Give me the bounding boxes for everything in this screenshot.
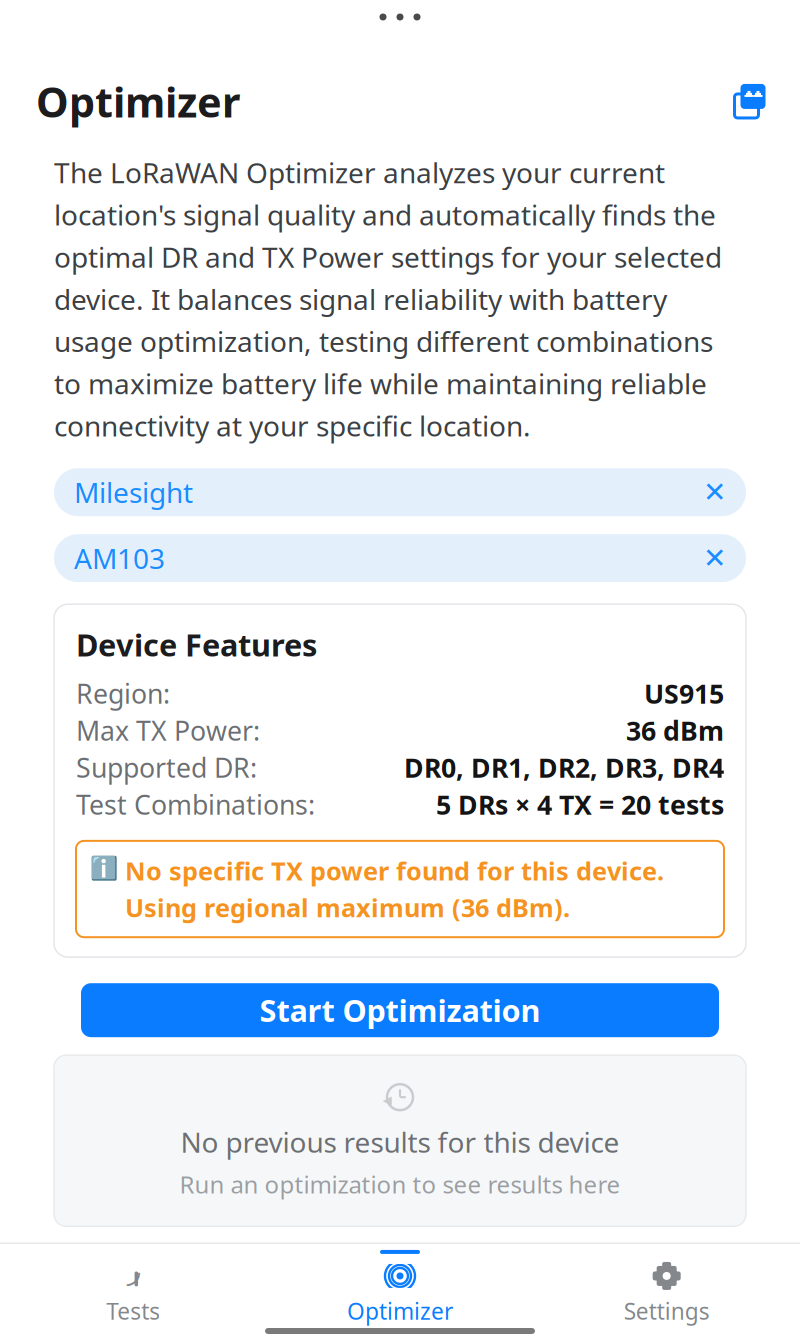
staticText: Milesight xyxy=(74,474,193,511)
staticText: AM103 xyxy=(74,540,165,577)
button[interactable]: Milesight xyxy=(54,468,746,516)
staticText: Optimizer xyxy=(36,74,240,129)
staticText: Tests xyxy=(106,1296,160,1326)
staticText: Max TX Power: xyxy=(76,713,260,748)
staticText: Test Combinations: xyxy=(76,787,315,822)
button[interactable]: ◞ xyxy=(0,1244,267,1326)
staticText: Device Features xyxy=(76,624,317,665)
staticText: Settings xyxy=(624,1296,710,1326)
staticText: Supported DR: xyxy=(76,750,257,785)
staticText: ◞ xyxy=(127,1250,140,1290)
staticText: The LoRaWAN Optimizer analyzes your curr… xyxy=(54,154,722,444)
staticText: Optimizer xyxy=(347,1296,453,1326)
staticText: Start Optimization xyxy=(259,990,540,1030)
staticText: ✕ xyxy=(703,542,726,574)
button[interactable]: Optimizer xyxy=(267,1244,533,1326)
button[interactable]: Saved results gallery xyxy=(730,84,764,118)
button[interactable]: Start Optimization xyxy=(81,983,719,1037)
staticText: 36 dBm xyxy=(626,713,724,748)
staticText: ✕ xyxy=(703,476,726,508)
button[interactable]: Settings xyxy=(533,1244,800,1326)
staticText: DR0, DR1, DR2, DR3, DR4 xyxy=(404,750,724,785)
staticText: 5 DRs × 4 TX = 20 tests xyxy=(436,787,724,822)
staticText: No previous results for this device xyxy=(180,1123,619,1160)
staticText: No specific TX power found for this devi… xyxy=(125,854,664,924)
button[interactable]: AM103 xyxy=(54,534,746,582)
staticText: ◀ xyxy=(382,1093,391,1107)
staticText: US915 xyxy=(644,676,724,711)
staticText: Region: xyxy=(76,676,170,711)
staticText: ℹ️ xyxy=(90,855,118,881)
staticText: Run an optimization to see results here xyxy=(179,1168,620,1200)
